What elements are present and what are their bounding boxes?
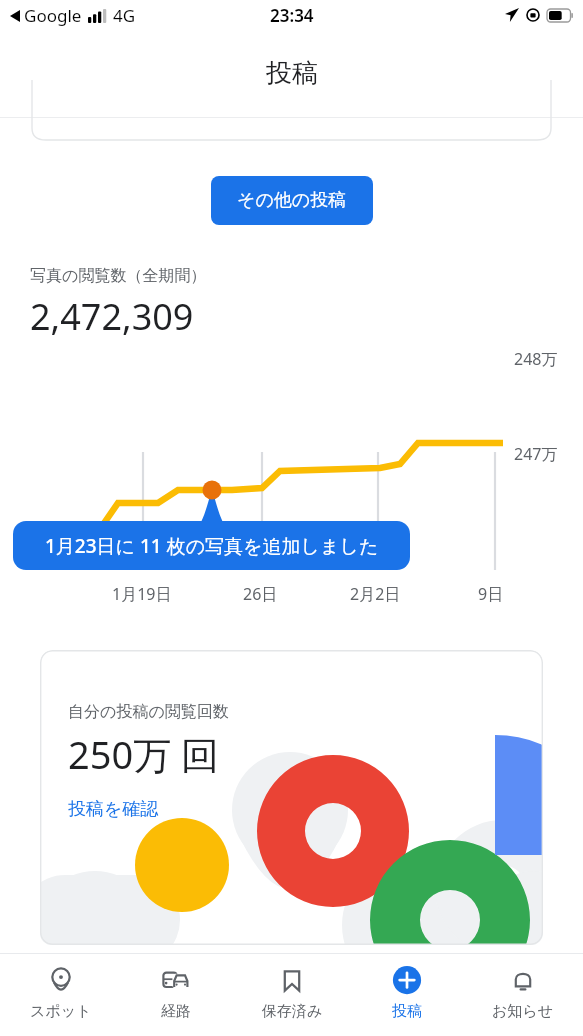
staticText: 247万 [514,443,558,465]
button[interactable]: 経路 [121,954,231,1036]
button[interactable]: スポット [6,954,116,1036]
staticText: お知らせ [492,1002,554,1021]
staticText: 4G [113,4,136,27]
staticText: 投稿 [266,57,318,90]
staticText: Google [24,4,82,27]
button[interactable]: 投稿 [352,954,462,1036]
staticText: 26日 [243,583,278,605]
staticText: 2月2日 [350,583,401,605]
staticText: 250万 回 [68,728,220,780]
staticText: 自分の投稿の閲覧回数 [68,702,229,722]
button[interactable]: 自分の投稿の閲覧回数 [40,650,543,945]
staticText: 2,472,309 [30,292,194,341]
staticText: スポット [30,1002,92,1021]
staticText: 保存済み [262,1002,323,1021]
button[interactable]: 投稿を確認 [68,798,159,821]
staticText: 経路 [161,1002,191,1021]
button[interactable]: お知らせ [468,954,578,1036]
staticText: 248万 [514,348,558,370]
staticText: 1月19日 [112,583,172,605]
button[interactable]: 1月23日に 11 枚の写真を追加しました [13,521,410,570]
staticText: 投稿を確認 [68,798,159,821]
staticText: その他の投稿 [237,189,347,212]
button[interactable]: 保存済み [237,954,347,1036]
button[interactable]: その他の投稿 [211,176,373,225]
staticText: 23:34 [270,4,314,27]
staticText: 写真の閲覧数（全期間） [30,266,207,286]
staticText: 1月23日に 11 枚の写真を追加しました [45,533,379,559]
staticText: 9日 [478,583,504,605]
staticText: 投稿 [392,1002,422,1021]
